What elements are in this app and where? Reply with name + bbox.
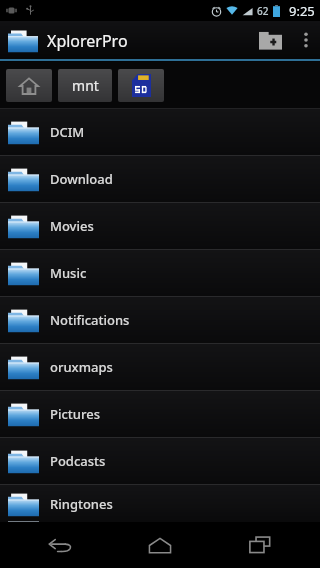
button[interactable]: Ringtones xyxy=(0,485,320,522)
staticText: 9:25 xyxy=(289,2,315,20)
staticText: mnt xyxy=(72,76,99,95)
staticText: Ringtones xyxy=(50,495,113,513)
staticText: Pictures xyxy=(50,405,100,423)
button[interactable]: Podcasts xyxy=(0,438,320,484)
button[interactable]: Music xyxy=(0,250,320,296)
button[interactable]: Path segment xyxy=(6,69,52,102)
staticText: oruxmaps xyxy=(50,358,113,376)
staticText: Download xyxy=(50,170,113,188)
button[interactable]: Pictures xyxy=(0,391,320,437)
staticText: Notifications xyxy=(50,311,130,329)
staticText: Music xyxy=(50,264,87,282)
button[interactable]: More options xyxy=(292,21,320,59)
staticText: XplorerPro xyxy=(47,30,128,52)
button[interactable]: oruxmaps xyxy=(0,344,320,390)
staticText: Podcasts xyxy=(50,452,106,470)
button[interactable]: XplorerPro xyxy=(8,28,128,53)
button[interactable]: Home xyxy=(120,522,200,568)
button[interactable]: Path segment xyxy=(118,69,164,102)
button[interactable]: mnt xyxy=(58,69,112,102)
staticText: Movies xyxy=(50,217,94,235)
button[interactable]: Download xyxy=(0,156,320,202)
button[interactable]: New folder xyxy=(248,21,292,59)
button[interactable]: Movies xyxy=(0,203,320,249)
button[interactable]: Back xyxy=(20,522,100,568)
staticText: 62 xyxy=(257,4,269,18)
button[interactable]: Notifications xyxy=(0,297,320,343)
button[interactable]: DCIM xyxy=(0,109,320,155)
button[interactable]: Recent apps xyxy=(220,522,300,568)
staticText: DCIM xyxy=(50,123,85,141)
